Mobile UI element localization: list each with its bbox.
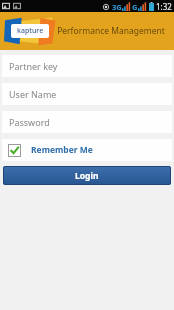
staticText: Login [75,170,99,182]
staticText: 1:32 [156,1,172,12]
button[interactable]: Login [3,166,171,185]
staticText: Performance Management [57,25,165,37]
button[interactable]: Remember Me [2,139,172,161]
staticText: kapture [17,26,44,36]
button[interactable]: User Name [2,83,172,105]
button[interactable]: Password [2,111,172,133]
staticText: G [132,2,138,12]
staticText: Partner key [9,60,58,72]
staticText: Remember Me [31,144,93,156]
button[interactable]: Partner key [2,55,172,77]
staticText: 3G [112,2,122,12]
staticText: User Name [9,88,57,100]
staticText: Password [9,116,50,128]
